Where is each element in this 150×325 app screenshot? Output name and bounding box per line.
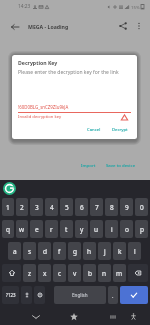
staticText: r — [50, 225, 53, 234]
staticText: Decrypt — [112, 127, 128, 133]
staticText: v — [73, 269, 77, 278]
staticText: c — [58, 269, 62, 278]
staticText: 1 — [6, 203, 10, 212]
button[interactable]: Enter — [120, 286, 148, 304]
button[interactable]: x — [38, 264, 51, 282]
staticText: 5 — [65, 203, 69, 212]
staticText: u — [94, 225, 99, 234]
button[interactable]: 7 — [90, 198, 103, 216]
staticText: a — [13, 247, 17, 256]
button[interactable]: z — [23, 264, 36, 282]
staticText: x — [43, 269, 47, 278]
button[interactable]: f — [53, 242, 66, 260]
staticText: o — [125, 225, 129, 234]
staticText: 9 — [125, 203, 129, 212]
staticText: s — [28, 247, 32, 256]
staticText: 4 — [50, 203, 54, 212]
button[interactable]: u — [90, 220, 103, 238]
button[interactable]: a — [8, 242, 21, 260]
button[interactable]: d — [38, 242, 51, 260]
button[interactable]: ?123 — [2, 286, 19, 304]
button[interactable]: c — [53, 264, 66, 282]
button[interactable]: m — [113, 264, 126, 282]
staticText: Import — [81, 162, 96, 168]
staticText: k — [118, 247, 122, 256]
button[interactable]: Share — [115, 18, 131, 34]
button[interactable]: Home — [69, 312, 78, 321]
staticText: j — [104, 247, 106, 256]
button[interactable]: Shift — [2, 264, 21, 282]
button[interactable]: g — [68, 242, 81, 260]
button[interactable]: q — [2, 220, 14, 238]
staticText: 15% — [131, 4, 140, 10]
button[interactable]: w — [16, 220, 28, 238]
button[interactable]: l — [128, 242, 141, 260]
button[interactable]: v — [68, 264, 81, 282]
button[interactable]: Google search — [3, 182, 16, 195]
staticText: ?123 — [6, 292, 16, 298]
staticText: e — [35, 225, 39, 234]
button[interactable]: . — [108, 286, 118, 304]
button[interactable]: o — [120, 220, 133, 238]
button[interactable]: e — [30, 220, 43, 238]
staticText: 3 — [35, 203, 39, 212]
staticText: y — [80, 225, 84, 234]
staticText: 14:23 — [18, 3, 31, 10]
staticText: Invalid decryption key — [18, 114, 62, 120]
button[interactable]: Save to device — [103, 160, 139, 170]
staticText: Cancel — [87, 127, 101, 133]
staticText: 6 — [80, 203, 84, 212]
button[interactable]: k — [113, 242, 126, 260]
button[interactable]: English — [54, 286, 106, 304]
staticText: b — [88, 269, 92, 278]
button[interactable]: 2 — [16, 198, 28, 216]
button[interactable]: 8 — [105, 198, 118, 216]
staticText: d — [43, 247, 47, 256]
staticText: p — [140, 225, 144, 234]
staticText: l — [134, 247, 136, 256]
staticText: 7 — [95, 203, 99, 212]
button[interactable]: More options — [131, 18, 147, 34]
button[interactable]: Back — [31, 312, 40, 321]
button[interactable]: Cancel — [84, 125, 104, 135]
button[interactable]: h — [83, 242, 96, 260]
button[interactable]: n — [98, 264, 111, 282]
button[interactable]: Accessibility — [129, 312, 138, 321]
button[interactable]: 1 — [2, 198, 14, 216]
staticText: t — [65, 225, 68, 234]
button[interactable]: i — [105, 220, 118, 238]
button[interactable]: 6 — [75, 198, 88, 216]
button[interactable]: Voice input — [21, 286, 32, 304]
button[interactable]: 9 — [120, 198, 133, 216]
button[interactable]: b — [83, 264, 96, 282]
button[interactable]: Import — [78, 160, 99, 170]
button[interactable]: j — [98, 242, 111, 260]
button[interactable]: s — [23, 242, 36, 260]
button[interactable]: Navigate up — [7, 19, 22, 34]
staticText: i — [111, 225, 113, 234]
staticText: Decryption Key — [18, 59, 58, 66]
staticText: !60D0BLG_snCZ9ZIu9kJA — [18, 104, 69, 110]
staticText: English — [72, 292, 88, 298]
button[interactable]: Backspace — [128, 264, 148, 282]
button[interactable]: r — [45, 220, 58, 238]
button[interactable]: 5 — [60, 198, 73, 216]
button[interactable]: t — [60, 220, 73, 238]
staticText: Save to device — [106, 162, 136, 168]
staticText: 2 — [20, 203, 24, 212]
staticText: . — [112, 292, 114, 299]
button[interactable]: 0 — [135, 198, 148, 216]
staticText: 8 — [110, 203, 114, 212]
button[interactable]: 4 — [45, 198, 58, 216]
button[interactable]: Emoji — [34, 286, 45, 304]
staticText: g — [73, 247, 77, 256]
staticText: MEGA - Loading — [28, 23, 69, 30]
button[interactable]: 3 — [30, 198, 43, 216]
staticText: h — [87, 247, 92, 256]
staticText: q — [6, 225, 10, 234]
button[interactable]: p — [135, 220, 148, 238]
button[interactable]: Decrypt — [109, 125, 131, 135]
staticText: m — [116, 269, 123, 278]
button[interactable]: Recent apps — [108, 312, 117, 321]
button[interactable]: y — [75, 220, 88, 238]
